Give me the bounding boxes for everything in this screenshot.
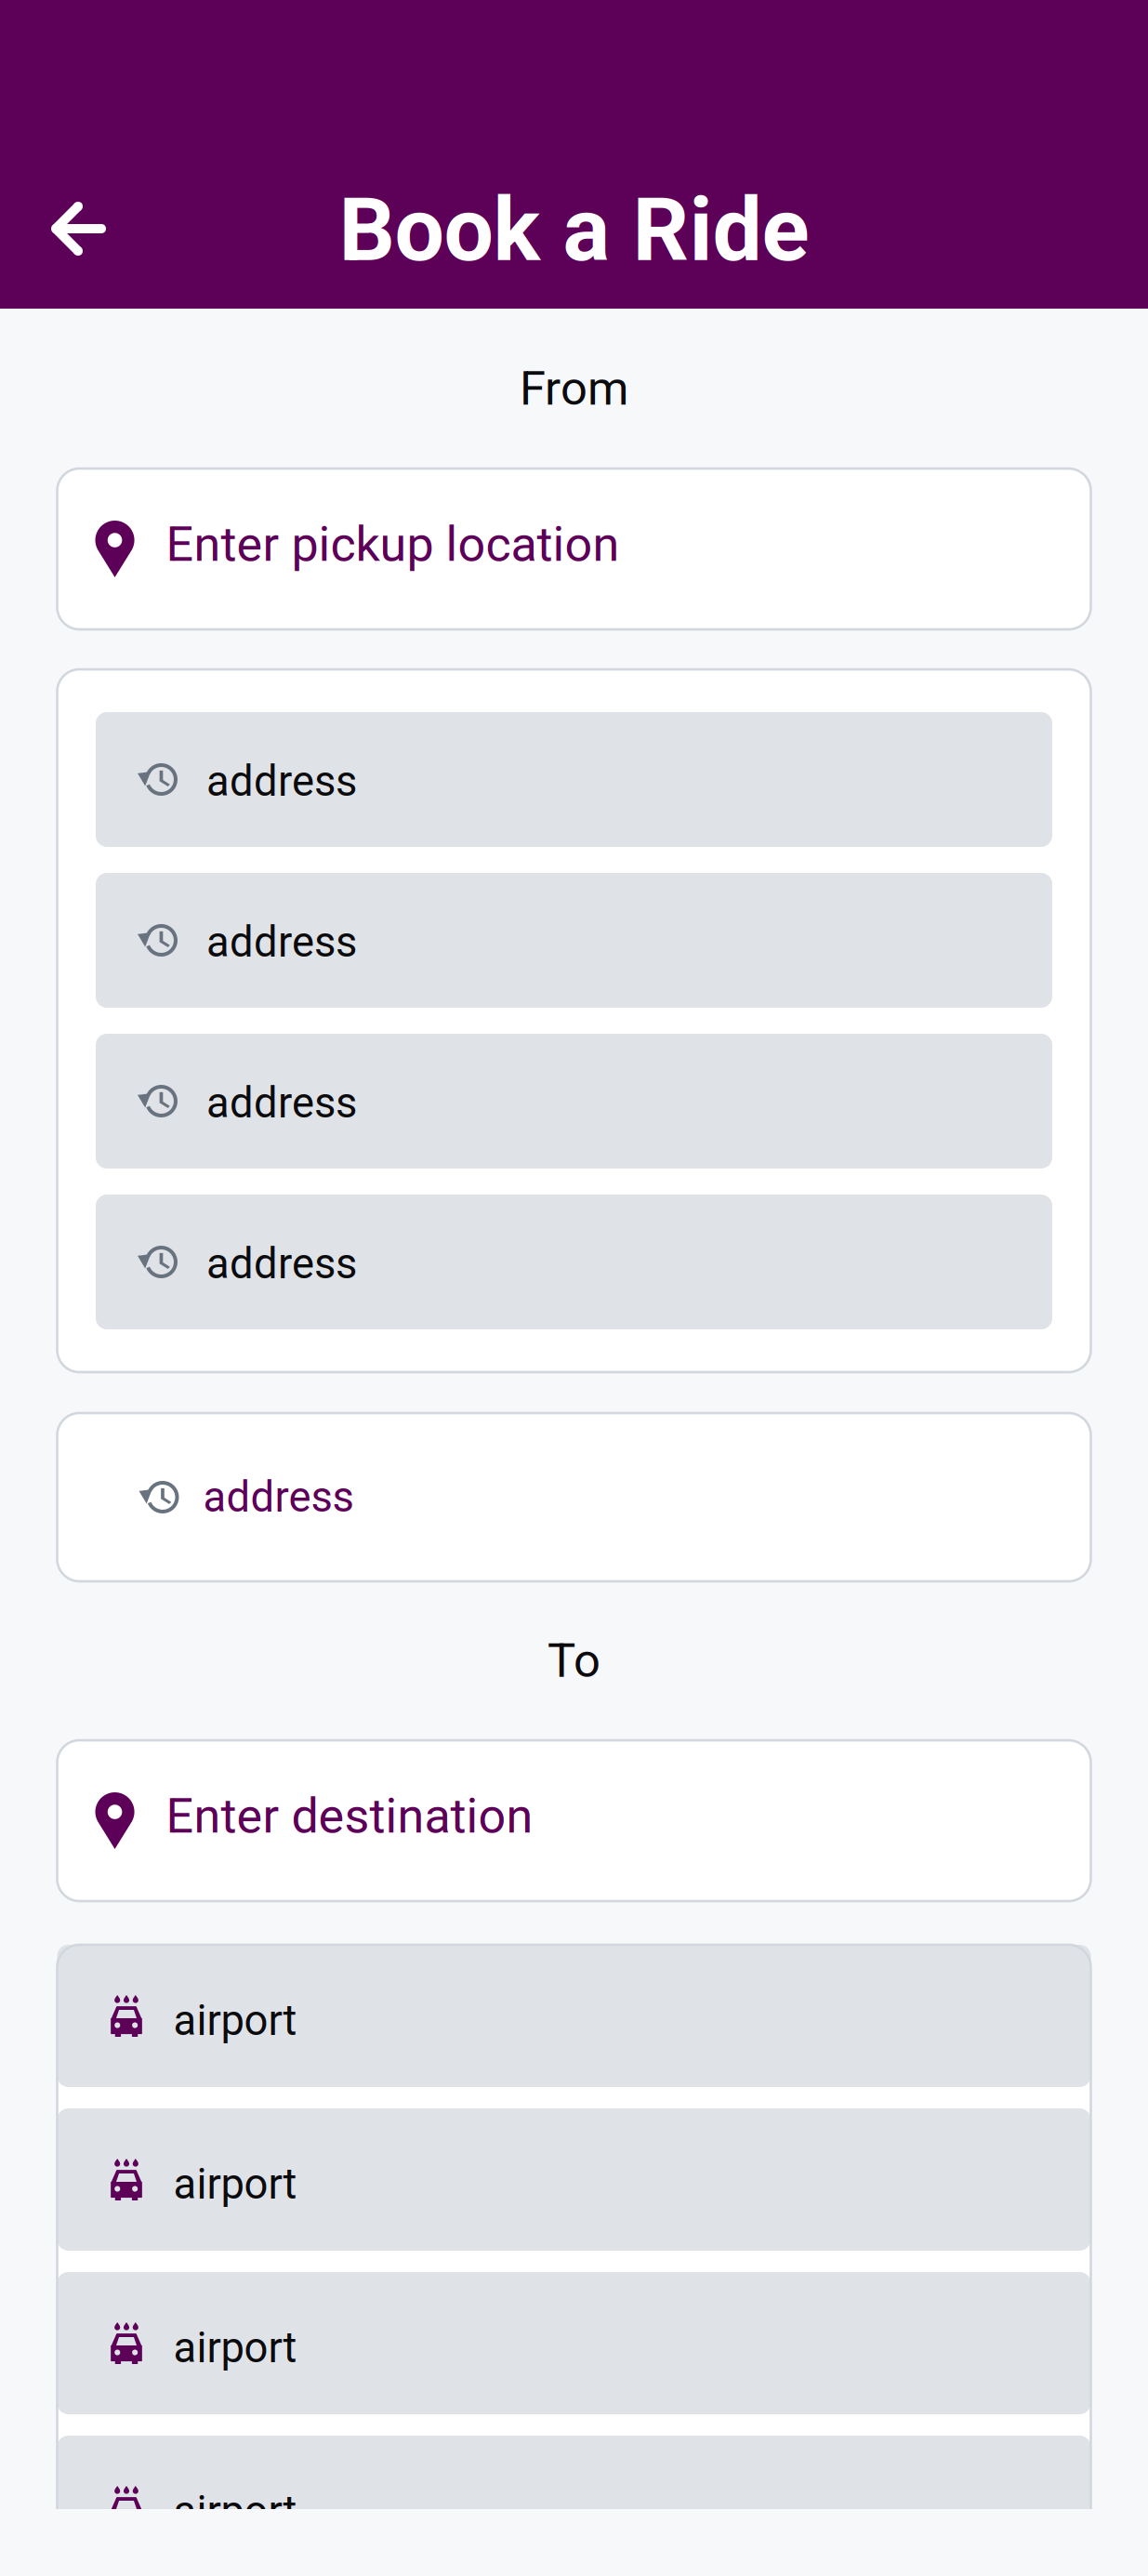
button[interactable]: airport <box>57 2108 1091 2251</box>
staticText: address <box>206 1078 357 1128</box>
staticText: airport <box>173 2159 297 2209</box>
staticText: Book a Ride <box>339 178 809 282</box>
button[interactable]: airport <box>57 2436 1091 2576</box>
staticText: Enter pickup location <box>166 516 620 573</box>
button[interactable]: address <box>96 712 1052 847</box>
button[interactable]: airport <box>57 2272 1091 2414</box>
staticText: From <box>520 361 628 416</box>
button[interactable]: address <box>96 1034 1052 1169</box>
staticText: airport <box>173 2323 297 2372</box>
button[interactable]: airport <box>57 1945 1091 2087</box>
button[interactable]: Enter destination <box>57 1740 1091 1901</box>
staticText: airport <box>173 2487 297 2536</box>
button[interactable]: address <box>57 1413 1091 1581</box>
button[interactable]: Enter pickup location <box>57 469 1091 629</box>
staticText: address <box>206 917 357 967</box>
button[interactable]: Back <box>0 0 149 277</box>
staticText: To <box>548 1633 600 1688</box>
button[interactable]: address <box>96 873 1052 1008</box>
button[interactable]: address <box>96 1195 1052 1329</box>
staticText: address <box>203 1472 354 1522</box>
staticText: Enter destination <box>166 1788 533 1844</box>
staticText: address <box>206 757 357 806</box>
staticText: airport <box>173 1996 297 2045</box>
staticText: address <box>206 1239 357 1288</box>
